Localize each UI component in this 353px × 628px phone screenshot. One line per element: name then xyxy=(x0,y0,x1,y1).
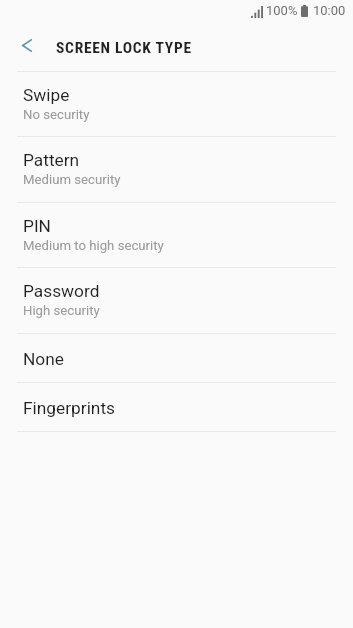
staticText: Medium security xyxy=(23,172,121,187)
staticText: 100% xyxy=(266,3,298,18)
button[interactable]: Fingerprints xyxy=(0,382,353,431)
staticText: High security xyxy=(23,303,100,318)
staticText: No security xyxy=(23,107,90,122)
staticText: Pattern xyxy=(23,150,80,170)
button[interactable]: Swipe xyxy=(0,71,353,137)
staticText: Medium to high security xyxy=(23,238,164,253)
button[interactable]: Pattern xyxy=(0,136,353,202)
staticText: Swipe xyxy=(23,85,70,105)
button[interactable]: None xyxy=(0,333,353,382)
button[interactable]: Navigate up xyxy=(0,21,49,71)
staticText: SCREEN LOCK TYPE xyxy=(56,39,192,57)
button[interactable]: Password xyxy=(0,267,353,333)
button[interactable]: PIN xyxy=(0,202,353,268)
staticText: Password xyxy=(23,281,100,301)
staticText: Fingerprints xyxy=(23,398,115,418)
staticText: None xyxy=(23,349,64,369)
staticText: PIN xyxy=(23,216,51,236)
staticText: 10:00 xyxy=(313,3,346,18)
